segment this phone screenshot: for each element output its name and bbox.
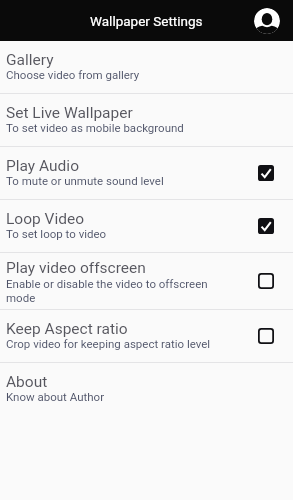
staticText: About — [6, 373, 48, 391]
button[interactable]: Play video offscreen — [254, 269, 278, 293]
staticText: To set loop to video — [6, 227, 220, 241]
staticText: Play Audio — [6, 157, 79, 175]
staticText: Crop video for keeping aspect ratio leve… — [6, 337, 220, 351]
button[interactable]: Play Audio — [0, 147, 293, 199]
button[interactable]: About — [0, 363, 293, 415]
staticText: To set video as mobile background — [6, 121, 220, 135]
button[interactable]: Set Live Wallpaper — [0, 94, 293, 146]
staticText: Set Live Wallpaper — [6, 104, 133, 122]
button[interactable]: Account — [254, 8, 280, 34]
button[interactable]: Keep Aspect ratio — [0, 310, 293, 362]
button[interactable]: Play Audio — [254, 161, 278, 185]
staticText: Enable or disable the video to offscreen… — [6, 277, 220, 305]
staticText: Gallery — [6, 51, 54, 69]
staticText: To mute or unmute sound level — [6, 174, 220, 188]
button[interactable]: Loop Video — [254, 214, 278, 238]
staticText: Know about Author — [6, 390, 220, 404]
staticText: Wallpaper Settings — [90, 13, 203, 29]
button[interactable]: Loop Video — [0, 200, 293, 252]
button[interactable]: Gallery — [0, 41, 293, 93]
staticText: Choose video from gallery — [6, 68, 220, 82]
button[interactable]: Keep Aspect ratio — [254, 324, 278, 348]
staticText: Play video offscreen — [6, 259, 146, 277]
button[interactable]: Play video offscreen — [0, 253, 293, 309]
staticText: Keep Aspect ratio — [6, 320, 128, 338]
staticText: Loop Video — [6, 210, 85, 228]
